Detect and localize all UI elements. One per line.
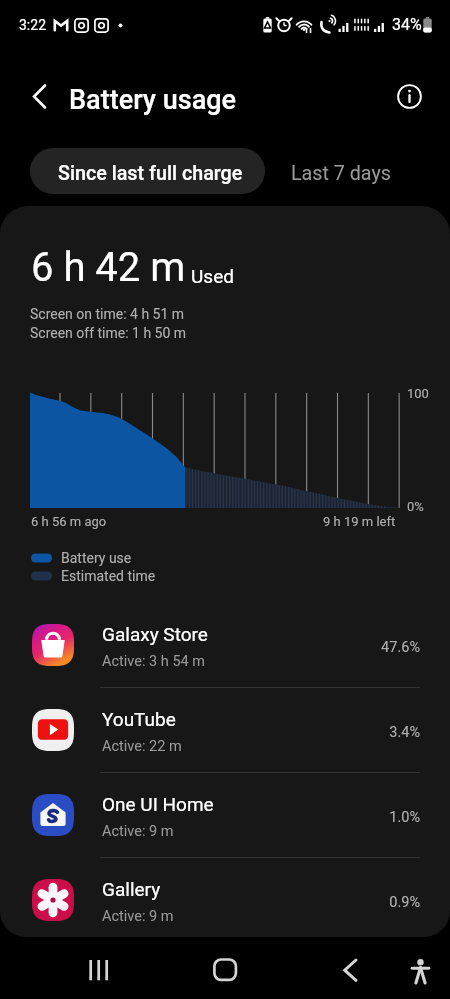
button[interactable]: Accessibility [392,937,450,999]
staticText: Gallery [102,878,161,900]
staticText: Active: 9 m [102,823,174,840]
staticText: Active: 9 m [102,908,174,925]
button[interactable]: Home [189,937,262,999]
button[interactable]: Since last full charge [30,148,265,194]
button[interactable]: Recent apps [54,937,127,999]
staticText: Battery use [61,550,132,566]
staticText: 100 [407,386,429,401]
button[interactable]: One UI Home [0,773,450,858]
staticText: Galaxy Store [102,623,208,645]
staticText: Screen on time: 4 h 51 m [30,306,185,322]
staticText: Used [191,265,234,287]
staticText: One UI Home [102,793,214,815]
staticText: Last 7 days [291,162,391,185]
staticText: Estimated time [61,568,156,584]
staticText: Screen off time: 1 h 50 m [30,325,187,341]
staticText: Active: 3 h 54 m [102,653,205,670]
staticText: 6 h 56 m ago [31,514,107,529]
staticText: 34% [392,15,422,34]
staticText: Since last full charge [58,162,243,185]
staticText: 3:22 [19,17,46,33]
button[interactable]: YouTube [0,688,450,773]
staticText: 0.9% [330,894,420,911]
button[interactable]: Back [19,76,60,117]
button[interactable]: Gallery [0,858,450,937]
staticText: 9 h 19 m left [323,514,396,529]
staticText: 6 h 42 m [31,244,186,291]
staticText: YouTube [102,708,176,730]
button[interactable]: Information [389,76,430,117]
button[interactable]: Galaxy Store [0,603,450,688]
staticText: Battery usage [69,84,237,116]
staticText: Active: 22 m [102,738,182,755]
staticText: 47.6% [330,639,420,656]
staticText: 0% [407,499,424,514]
staticText: 3.4% [330,724,420,741]
staticText: 1.0% [330,809,420,826]
button[interactable]: Back [314,937,387,999]
button[interactable]: Last 7 days [271,148,411,194]
